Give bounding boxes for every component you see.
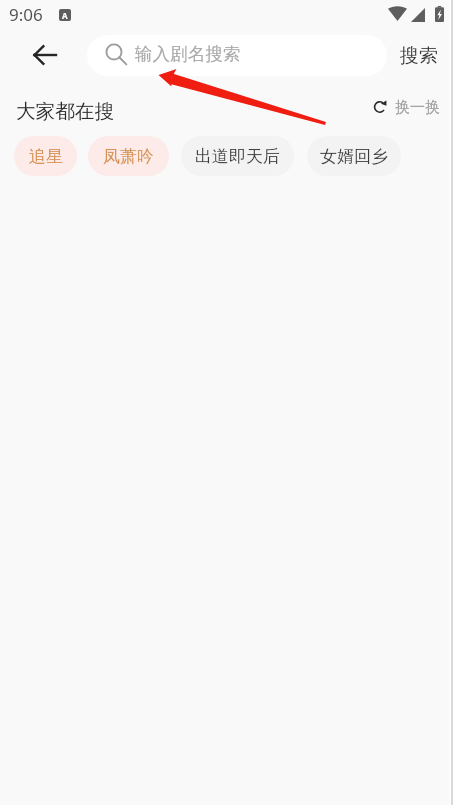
staticText: 追星 <box>29 146 63 167</box>
button[interactable]: 搜索 <box>392 35 446 76</box>
staticText: 凤萧吟 <box>103 146 154 167</box>
staticText: A <box>62 10 68 21</box>
staticText: 9:06 <box>9 3 43 26</box>
button[interactable]: 输入剧名搜索 <box>87 35 387 76</box>
button[interactable]: 追星 <box>14 136 77 176</box>
button[interactable]: 换一换 <box>371 93 442 121</box>
staticText: 女婿回乡 <box>320 146 388 167</box>
button[interactable]: 凤萧吟 <box>88 136 169 176</box>
button[interactable]: Back <box>22 33 66 77</box>
staticText: 搜索 <box>400 44 438 68</box>
staticText: 输入剧名搜索 <box>135 43 241 65</box>
staticText: 出道即天后 <box>195 146 280 167</box>
staticText: 换一换 <box>395 98 440 117</box>
staticText: 大家都在搜 <box>16 99 114 123</box>
button[interactable]: 女婿回乡 <box>307 136 401 176</box>
button[interactable]: 出道即天后 <box>181 136 294 176</box>
